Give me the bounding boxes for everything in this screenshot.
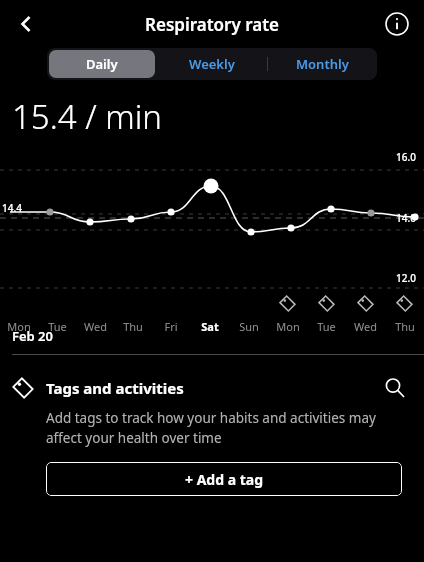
staticText: Feb 20 <box>12 327 53 345</box>
staticText: Sun <box>239 319 259 334</box>
staticText: 15.4 / min <box>12 94 162 139</box>
staticText: Wed <box>354 319 377 334</box>
staticText: 14.4 <box>2 201 22 215</box>
button[interactable]: Weekly <box>157 48 267 80</box>
button[interactable]: Daily <box>49 50 155 78</box>
staticText: 12.0 <box>396 271 416 285</box>
staticText: 16.0 <box>396 150 416 164</box>
staticText: Thu <box>395 319 415 334</box>
staticText: Thu <box>123 319 143 334</box>
staticText: Respiratory rate <box>145 13 280 36</box>
staticText: Tags and activities <box>46 378 184 398</box>
staticText: + Add a tag <box>185 470 264 489</box>
staticText: Add tags to track how your habits and ac… <box>46 409 398 447</box>
staticText: Monthly <box>296 55 349 73</box>
button[interactable]: Information <box>378 5 416 43</box>
staticText: Tue <box>48 319 67 334</box>
staticText: Wed <box>84 319 107 334</box>
staticText: Fri <box>164 319 178 334</box>
button[interactable]: Monthly <box>267 48 377 80</box>
staticText: Weekly <box>189 55 235 73</box>
staticText: Mon <box>7 319 31 334</box>
staticText: Tue <box>317 319 336 334</box>
staticText: Mon <box>276 319 300 334</box>
button[interactable]: Search tags <box>378 371 412 405</box>
button[interactable]: Back <box>6 4 46 44</box>
button[interactable]: + Add a tag <box>46 462 402 496</box>
staticText: Sat <box>201 319 219 334</box>
staticText: 14.0 <box>396 211 416 225</box>
staticText: Daily <box>86 55 118 73</box>
